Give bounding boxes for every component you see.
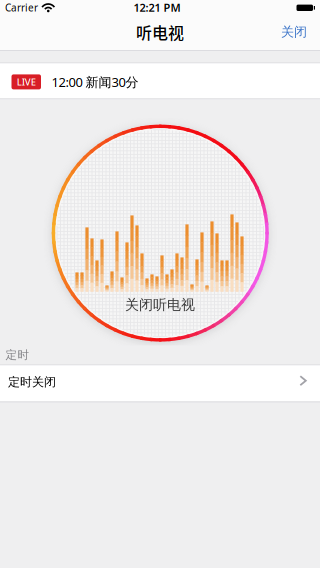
button[interactable]: 关闭听电视 bbox=[0, 99, 320, 345]
staticText: LIVE bbox=[17, 75, 36, 88]
staticText: 听电视 bbox=[136, 20, 184, 44]
button[interactable]: 定时关闭 bbox=[0, 365, 320, 401]
staticText: Carrier bbox=[5, 1, 38, 14]
staticText: 12:21 PM bbox=[133, 0, 180, 15]
staticText: 关闭听电视 bbox=[125, 296, 195, 314]
staticText: 定时关闭 bbox=[8, 374, 56, 389]
button[interactable]: 关闭 bbox=[281, 20, 320, 44]
button[interactable]: LIVE bbox=[0, 63, 320, 98]
staticText: 12:00 新闻30分 bbox=[51, 73, 138, 91]
staticText: 定时 bbox=[5, 348, 29, 362]
staticText: 关闭 bbox=[281, 24, 307, 40]
